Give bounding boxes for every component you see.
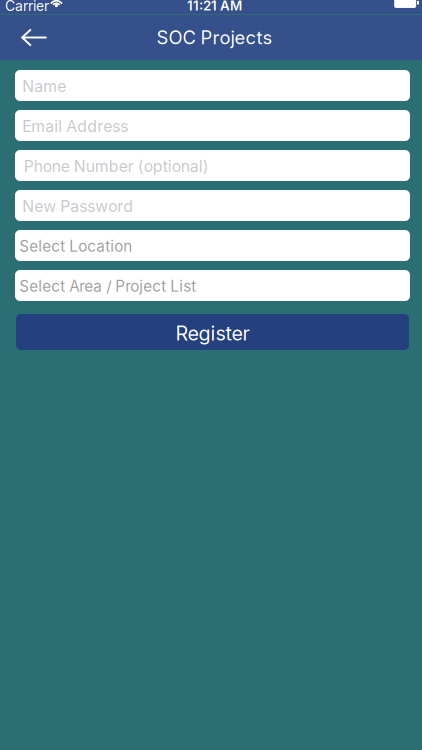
staticText: Select Area / Project List xyxy=(19,277,196,295)
staticText: Register xyxy=(175,321,249,345)
button[interactable]: Email Address xyxy=(15,110,410,141)
staticText: SOC Projects xyxy=(156,26,272,49)
staticText: Name xyxy=(22,77,66,96)
button[interactable]: Register xyxy=(16,314,409,350)
button[interactable]: Phone Number (optional) xyxy=(15,150,410,181)
staticText: Select Location xyxy=(19,237,132,255)
staticText: Phone Number (optional) xyxy=(24,157,209,176)
button[interactable]: Back xyxy=(0,15,66,60)
button[interactable]: Name xyxy=(15,70,410,101)
button[interactable]: New Password xyxy=(15,190,410,221)
button[interactable]: Select Area / Project List xyxy=(15,270,410,301)
staticText: Email Address xyxy=(22,117,128,136)
button[interactable]: Select Location xyxy=(15,230,410,261)
staticText: Carrier xyxy=(5,0,49,14)
staticText: 11:21 AM xyxy=(187,0,242,14)
staticText: New Password xyxy=(22,197,133,216)
